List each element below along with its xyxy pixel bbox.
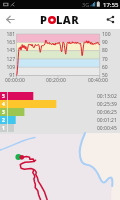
- staticText: 00:06:25: [97, 109, 117, 116]
- staticText: 90: [102, 39, 118, 46]
- staticText: 5: [2, 93, 5, 100]
- staticText: 109: [0, 64, 15, 71]
- staticText: 00:25:39: [97, 101, 117, 108]
- staticText: P: [40, 12, 48, 27]
- staticText: 127: [0, 56, 15, 63]
- staticText: 1: [2, 125, 5, 132]
- staticText: 00:20:00: [46, 77, 66, 84]
- staticText: 80: [102, 47, 118, 54]
- staticText: 4: [2, 101, 5, 108]
- button[interactable]: 2: [0, 116, 120, 124]
- button[interactable]: Share: [100, 9, 120, 29]
- staticText: 17:55: [103, 1, 119, 9]
- staticText: 00:00:45: [97, 125, 117, 132]
- staticText: 00:13:02: [97, 93, 117, 100]
- staticText: 3G: [82, 1, 90, 8]
- button[interactable]: [0, 134, 120, 200]
- staticText: 50: [102, 72, 118, 79]
- button[interactable]: 1: [0, 124, 120, 132]
- staticText: LAR: [56, 12, 80, 27]
- staticText: 00:40:00: [88, 77, 108, 84]
- staticText: 3: [2, 109, 5, 116]
- staticText: 60: [102, 64, 118, 71]
- staticText: 00:01:21: [97, 117, 117, 124]
- staticText: 181: [0, 31, 15, 38]
- button[interactable]: 5: [0, 92, 120, 100]
- button[interactable]: 3: [0, 108, 120, 116]
- staticText: 70: [102, 56, 118, 63]
- staticText: 00:00:00: [5, 77, 25, 84]
- staticText: 100: [102, 31, 118, 38]
- button[interactable]: Back: [0, 9, 20, 29]
- staticText: 145: [0, 47, 15, 54]
- staticText: 163: [0, 39, 15, 46]
- staticText: 91: [0, 72, 15, 79]
- staticText: 2: [2, 117, 5, 124]
- button[interactable]: 4: [0, 100, 120, 108]
